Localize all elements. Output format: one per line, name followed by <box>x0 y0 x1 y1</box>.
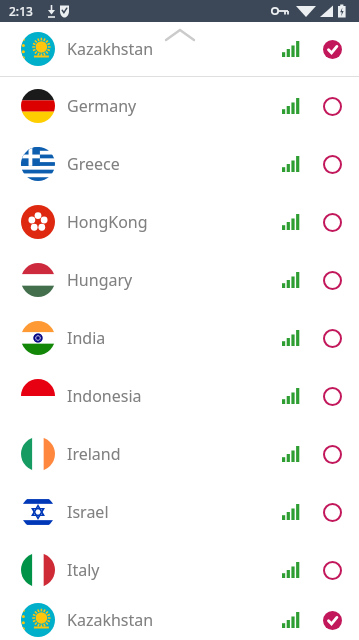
button[interactable]: HongKong <box>0 197 359 247</box>
button[interactable]: Select <box>320 442 344 466</box>
button[interactable]: Select <box>320 152 344 176</box>
button[interactable]: Selected <box>320 37 344 61</box>
button[interactable]: Select <box>320 558 344 582</box>
button[interactable]: Hungary <box>0 255 359 305</box>
button[interactable]: Select <box>320 500 344 524</box>
button[interactable]: Select <box>320 326 344 350</box>
button[interactable]: Select <box>320 268 344 292</box>
button[interactable]: Selected <box>320 608 344 632</box>
staticText: Ireland <box>67 443 282 465</box>
staticText: Kazakhstan <box>67 609 282 631</box>
button[interactable]: Indonesia <box>0 371 359 421</box>
staticText: Indonesia <box>67 385 282 407</box>
staticText: Italy <box>67 559 282 581</box>
staticText: Germany <box>67 95 282 117</box>
button[interactable]: Israel <box>0 487 359 537</box>
staticText: 2:13 <box>9 3 33 19</box>
button[interactable]: Select <box>320 384 344 408</box>
staticText: Kazakhstan <box>67 38 282 60</box>
button[interactable]: Kazakhstan <box>0 599 359 640</box>
button[interactable]: Germany <box>0 81 359 131</box>
staticText: HongKong <box>67 211 282 233</box>
staticText: India <box>67 327 282 349</box>
button[interactable]: India <box>0 313 359 363</box>
button[interactable]: Italy <box>0 545 359 595</box>
button[interactable]: Select <box>320 94 344 118</box>
staticText: Israel <box>67 501 282 523</box>
button[interactable]: Greece <box>0 139 359 189</box>
staticText: Greece <box>67 153 282 175</box>
button[interactable]: Select <box>320 210 344 234</box>
staticText: Hungary <box>67 269 282 291</box>
button[interactable]: Ireland <box>0 429 359 479</box>
button[interactable]: Kazakhstan <box>0 24 359 74</box>
